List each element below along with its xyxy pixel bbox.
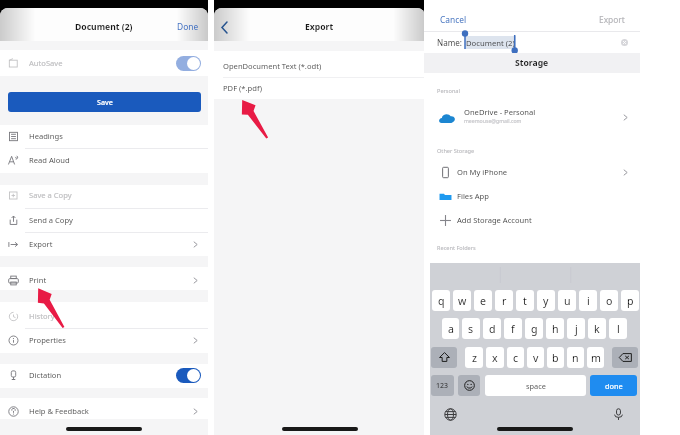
staticText: On My iPhone xyxy=(457,167,508,177)
staticText: Dictation xyxy=(29,370,62,380)
staticText: History xyxy=(29,311,55,321)
button[interactable]: Toggle AutoSave xyxy=(176,56,201,71)
button[interactable]: d xyxy=(483,318,501,339)
button[interactable]: Read Aloud xyxy=(0,149,208,171)
staticText: PDF (*.pdf) xyxy=(223,83,263,93)
button[interactable]: Dictation xyxy=(0,364,208,386)
button[interactable]: z xyxy=(465,347,483,368)
button[interactable]: Cancel xyxy=(440,14,467,25)
staticText: g xyxy=(531,322,538,336)
staticText: t xyxy=(523,294,527,308)
staticText: Name: xyxy=(437,37,462,48)
button[interactable]: e xyxy=(474,290,492,311)
staticText: p xyxy=(627,294,634,308)
button[interactable]: Change keyboard xyxy=(442,406,458,422)
button[interactable]: g xyxy=(525,318,543,339)
staticText: c xyxy=(513,351,519,365)
button[interactable]: y xyxy=(537,290,555,311)
button[interactable]: Save a Copy xyxy=(0,184,208,206)
button[interactable]: OpenDocument Text (*.odt) xyxy=(214,58,425,74)
button[interactable]: l xyxy=(609,318,627,339)
staticText: Recent Folders xyxy=(437,244,476,252)
button[interactable]: Emoji xyxy=(458,375,480,396)
button[interactable]: Back xyxy=(217,20,231,34)
staticText: Cancel xyxy=(440,14,467,25)
button[interactable]: Done xyxy=(177,21,199,32)
staticText: l xyxy=(617,322,620,336)
button[interactable]: Help & Feedback xyxy=(0,400,208,422)
button[interactable]: c xyxy=(507,347,524,368)
staticText: Add Storage Account xyxy=(457,215,532,225)
button[interactable]: u xyxy=(558,290,576,311)
staticText: Export xyxy=(29,239,53,249)
staticText: r xyxy=(502,294,507,308)
staticText: Document (2) xyxy=(75,21,133,33)
button[interactable]: 123 xyxy=(431,375,454,396)
staticText: Properties xyxy=(29,335,66,345)
button[interactable]: o xyxy=(600,290,618,311)
button[interactable]: Clear text xyxy=(619,37,629,47)
staticText: m xyxy=(591,351,601,365)
staticText: i xyxy=(587,294,590,308)
staticText: b xyxy=(552,351,559,365)
button[interactable]: r xyxy=(495,290,513,311)
staticText: h xyxy=(552,322,559,336)
button[interactable]: History xyxy=(0,305,208,327)
button[interactable]: On My iPhone xyxy=(424,161,640,183)
staticText: Export xyxy=(599,14,625,25)
button[interactable]: Headings xyxy=(0,125,208,147)
button[interactable]: Files App xyxy=(424,185,640,207)
staticText: w xyxy=(458,294,467,308)
staticText: meemouse@gmail.com xyxy=(464,117,522,124)
staticText: Help & Feedback xyxy=(29,406,89,416)
staticText: done xyxy=(605,381,623,391)
button[interactable]: Export xyxy=(599,14,625,25)
button[interactable]: m xyxy=(587,347,604,368)
button[interactable]: Export xyxy=(0,233,208,255)
button[interactable]: Dictate xyxy=(610,406,626,422)
staticText: f xyxy=(511,322,515,336)
button[interactable]: Print xyxy=(0,269,208,291)
staticText: u xyxy=(564,294,571,308)
staticText: z xyxy=(472,351,477,365)
button[interactable]: q xyxy=(432,290,450,311)
button[interactable]: h xyxy=(546,318,564,339)
button[interactable]: done xyxy=(590,375,637,396)
staticText: n xyxy=(572,351,579,365)
button[interactable]: s xyxy=(462,318,480,339)
button[interactable]: space xyxy=(485,375,586,396)
button[interactable]: Toggle Dictation xyxy=(176,368,201,383)
button[interactable]: Properties xyxy=(0,329,208,351)
staticText: Files App xyxy=(457,191,489,201)
staticText: k xyxy=(594,322,600,336)
button[interactable]: t xyxy=(516,290,534,311)
button[interactable]: Add Storage Account xyxy=(424,209,640,231)
staticText: Headings xyxy=(29,131,63,141)
button[interactable]: Save xyxy=(8,92,201,112)
staticText: Personal xyxy=(437,87,460,95)
staticText: Send a Copy xyxy=(29,215,73,225)
button[interactable]: AutoSave xyxy=(0,52,208,74)
button[interactable]: a xyxy=(442,318,459,339)
button[interactable]: i xyxy=(579,290,597,311)
button[interactable]: Shift xyxy=(431,347,457,368)
button[interactable]: p xyxy=(621,290,639,311)
button[interactable]: PDF (*.pdf) xyxy=(214,80,425,96)
staticText: Read Aloud xyxy=(29,155,70,165)
button[interactable]: k xyxy=(588,318,606,339)
staticText: Document (2) xyxy=(466,38,515,48)
button[interactable]: n xyxy=(567,347,584,368)
button[interactable]: Backspace xyxy=(612,347,638,368)
button[interactable]: w xyxy=(453,290,471,311)
staticText: Save a Copy xyxy=(29,190,72,200)
button[interactable]: b xyxy=(547,347,564,368)
button[interactable]: Send a Copy xyxy=(0,209,208,231)
button[interactable]: v xyxy=(527,347,544,368)
staticText: OpenDocument Text (*.odt) xyxy=(223,61,322,71)
button[interactable]: f xyxy=(504,318,522,339)
staticText: d xyxy=(489,322,496,336)
button[interactable]: x xyxy=(486,347,504,368)
button[interactable]: OneDrive - Personal xyxy=(424,104,640,131)
button[interactable]: j xyxy=(567,318,585,339)
staticText: Save xyxy=(97,97,113,107)
